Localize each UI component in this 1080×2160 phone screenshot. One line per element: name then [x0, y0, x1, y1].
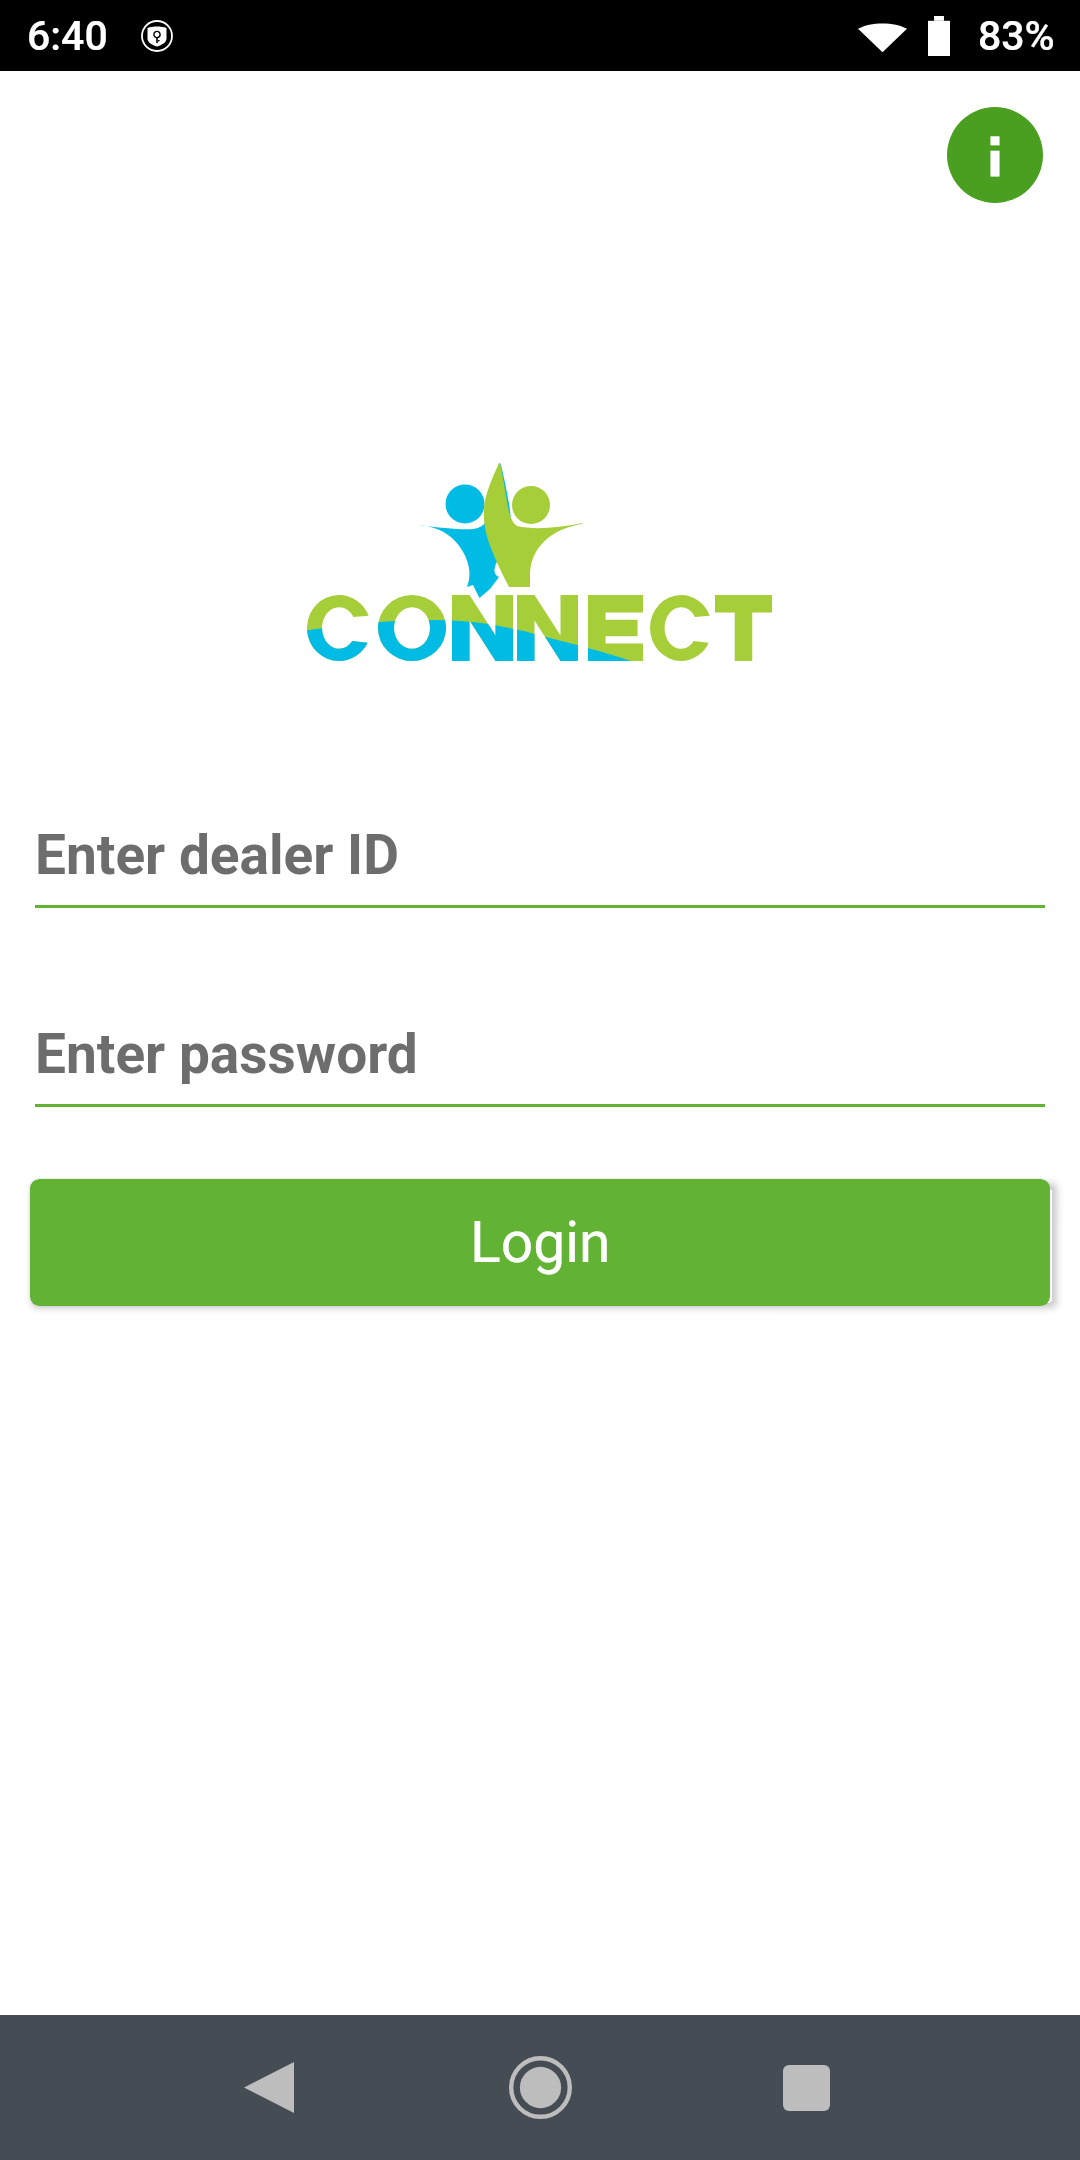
staticText: 83% — [978, 12, 1055, 60]
button[interactable]: Back — [196, 2015, 341, 2160]
staticText: Enter dealer ID — [35, 823, 399, 887]
button[interactable]: Enter password — [35, 1022, 1045, 1107]
button[interactable]: Information — [947, 107, 1043, 203]
staticText: 6:40 — [27, 12, 108, 60]
button[interactable]: Home — [468, 2015, 613, 2160]
button[interactable]: Recent apps — [734, 2015, 879, 2160]
button[interactable]: Enter dealer ID — [35, 823, 1045, 908]
staticText: Login — [470, 1209, 611, 1276]
button[interactable]: Login — [30, 1179, 1050, 1306]
staticText: Enter password — [35, 1022, 418, 1086]
